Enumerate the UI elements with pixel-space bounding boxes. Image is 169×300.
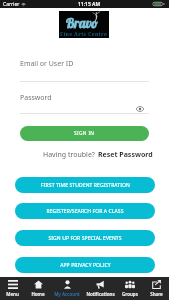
button[interactable]: Home: [25, 277, 51, 300]
button[interactable]: APP PRIVACY POLICY: [15, 257, 155, 273]
staticText: Having trouble?: [43, 150, 95, 160]
button[interactable]: Menu: [0, 277, 25, 300]
staticText: Reset Password: [98, 150, 153, 160]
staticText: SIGN IN: [74, 130, 95, 137]
button[interactable]: Notifications: [83, 277, 117, 300]
staticText: Menu: [6, 291, 19, 297]
staticText: Share: [150, 291, 163, 297]
button[interactable]: SIGN UP FOR SPECIAL EVENTS: [15, 230, 155, 246]
staticText: Carrier: [3, 1, 20, 8]
staticText: Notifications: [86, 291, 115, 297]
staticText: Fine Arts Centre: [60, 31, 108, 38]
button[interactable]: REGISTER/SEARCH FOR A CLASS: [15, 203, 155, 219]
staticText: APP PRIVACY POLICY: [60, 262, 111, 269]
staticText: Home: [31, 291, 45, 297]
staticText: REGISTER/SEARCH FOR A CLASS: [46, 208, 124, 215]
button[interactable]: FIRST TIME STUDENT REGISTRATION: [15, 177, 155, 193]
staticText: Bravo: [66, 15, 98, 29]
staticText: Email or User ID: [20, 59, 74, 69]
button[interactable]: Groups: [117, 277, 143, 300]
button[interactable]: Reset Password: [98, 150, 153, 160]
button[interactable]: Show password: [135, 104, 144, 113]
button[interactable]: SIGN IN: [20, 126, 149, 141]
staticText: Password: [20, 93, 52, 103]
button[interactable]: Share: [143, 277, 169, 300]
staticText: 11:15 AM: [78, 1, 101, 8]
staticText: SIGN UP FOR SPECIAL EVENTS: [48, 235, 122, 242]
staticText: My Account: [54, 291, 80, 297]
staticText: Groups: [122, 291, 138, 297]
staticText: FIRST TIME STUDENT REGISTRATION: [41, 182, 130, 189]
button[interactable]: My Account: [51, 277, 83, 300]
